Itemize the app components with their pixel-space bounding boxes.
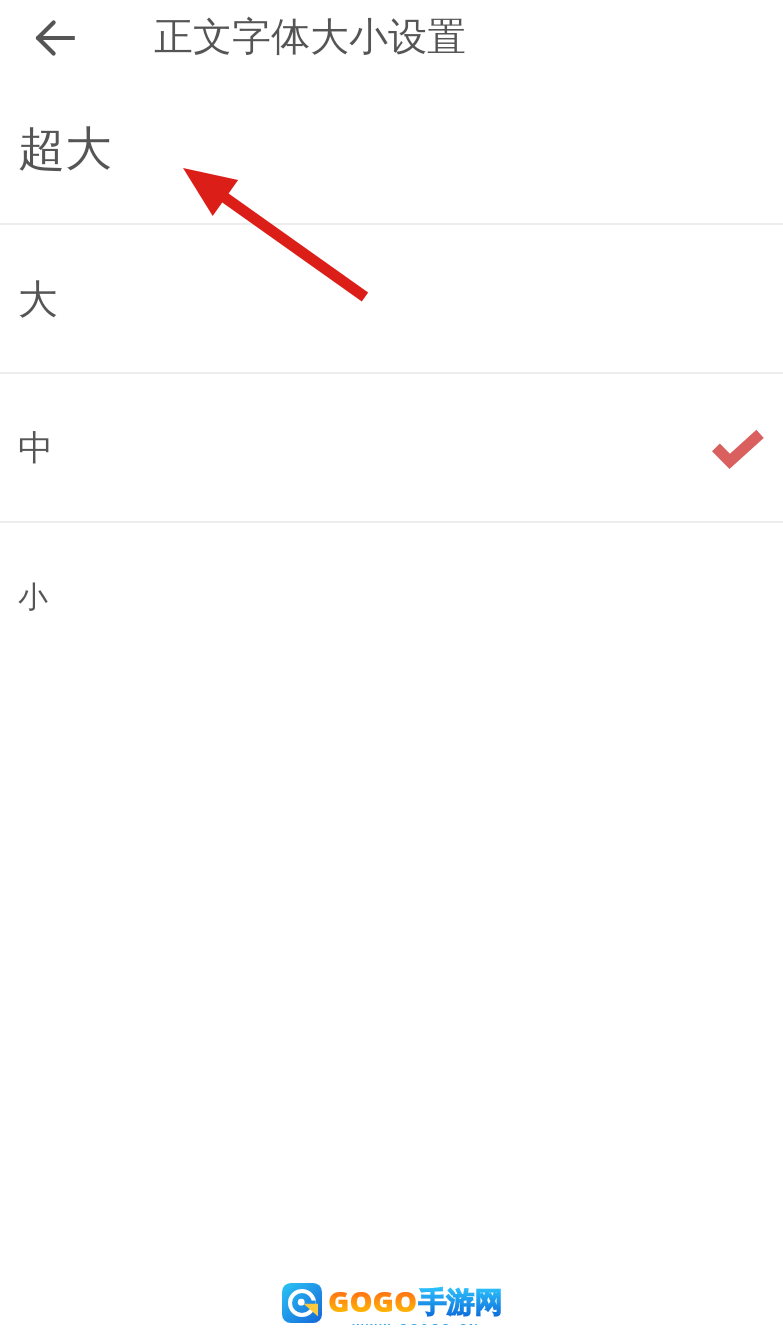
- button[interactable]: 大: [0, 225, 783, 372]
- button[interactable]: 返回: [14, 0, 98, 76]
- button[interactable]: 超大: [0, 76, 783, 223]
- staticText: W W W . G O 9 G O . C N: [352, 1320, 478, 1325]
- button[interactable]: 中: [0, 374, 783, 521]
- staticText: 小: [18, 578, 48, 616]
- staticText: GOGO: [328, 1281, 418, 1320]
- staticText: 超大: [18, 120, 112, 179]
- staticText: 手游网: [418, 1285, 502, 1320]
- staticText: 中: [18, 426, 53, 470]
- staticText: 大: [18, 274, 58, 324]
- button[interactable]: 小: [0, 523, 783, 670]
- staticText: 正文字体大小设置: [154, 12, 466, 61]
